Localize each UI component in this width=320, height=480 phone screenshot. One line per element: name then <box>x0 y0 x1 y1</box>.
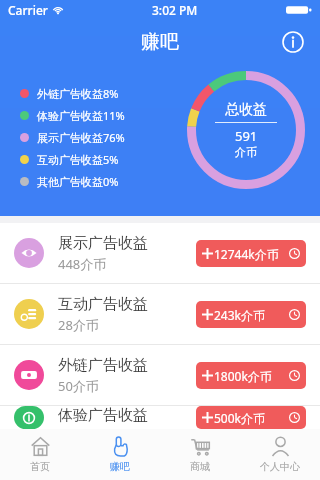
button[interactable]: 展示广告收益 <box>0 223 320 283</box>
button[interactable]: 互动广告收益 <box>0 284 320 344</box>
staticText: 总收益 <box>225 101 267 119</box>
staticText: 243k介币 <box>214 307 266 323</box>
staticText: 外链广告收益 <box>58 356 148 375</box>
staticText: 互动广告收益5% <box>37 152 119 167</box>
staticText: 1800k介币 <box>214 368 272 384</box>
staticText: Carrier <box>8 2 48 18</box>
staticText: 50介币 <box>58 377 99 395</box>
staticText: 首页 <box>30 460 50 473</box>
button[interactable]: 个人中心 <box>240 429 320 480</box>
button[interactable]: 243k介币 <box>196 301 306 328</box>
staticText: 外链广告收益8% <box>37 86 119 101</box>
button[interactable]: 赚吧 <box>80 429 160 480</box>
staticText: 28介币 <box>58 316 99 334</box>
button[interactable]: Info <box>276 25 310 59</box>
button[interactable]: 首页 <box>0 429 80 480</box>
staticText: 500k介币 <box>214 410 266 426</box>
staticText: 商城 <box>190 460 210 473</box>
button[interactable]: 12744k介币 <box>196 240 306 267</box>
staticText: 体验广告收益 <box>58 406 148 425</box>
button[interactable]: 体验广告收益 <box>0 406 320 429</box>
button[interactable]: 500k介币 <box>196 406 306 429</box>
staticText: 体验广告收益11% <box>37 108 125 123</box>
button[interactable]: 外链广告收益 <box>0 345 320 405</box>
staticText: 展示广告收益76% <box>37 130 125 145</box>
staticText: 3:02 PM <box>152 2 198 18</box>
staticText: 赚吧 <box>141 30 179 54</box>
staticText: 介币 <box>235 145 257 159</box>
button[interactable]: 商城 <box>160 429 240 480</box>
staticText: 591 <box>235 127 258 145</box>
staticText: 互动广告收益 <box>58 295 148 314</box>
staticText: 展示广告收益 <box>58 234 148 253</box>
staticText: 赚吧 <box>110 460 130 473</box>
staticText: 其他广告收益0% <box>37 174 119 189</box>
staticText: 个人中心 <box>260 460 300 473</box>
staticText: 12744k介币 <box>214 246 279 262</box>
staticText: 448介币 <box>58 255 107 273</box>
button[interactable]: 1800k介币 <box>196 362 306 389</box>
